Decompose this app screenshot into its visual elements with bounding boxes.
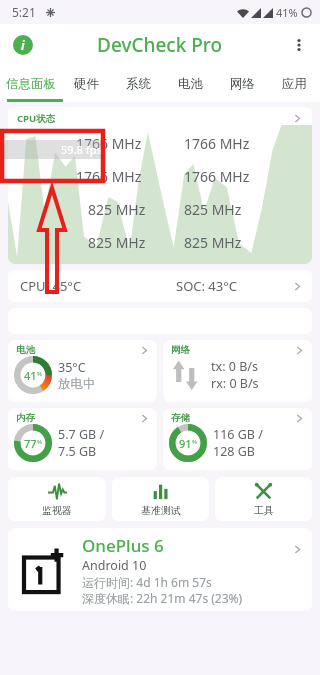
staticText: 825 MHz — [88, 233, 146, 252]
staticText: 5.7 GB / — [58, 426, 105, 443]
staticText: 1766 MHz — [76, 134, 142, 153]
staticText: CPU: 45°C — [20, 277, 82, 295]
staticText: 系统 — [126, 76, 151, 92]
staticText: 工具 — [254, 504, 274, 517]
staticText: 1766 MHz — [184, 134, 250, 153]
staticText: 信息面板 — [6, 76, 56, 92]
button[interactable]: 应用 — [268, 66, 320, 102]
button[interactable]: 基准测试 — [112, 477, 209, 521]
staticText: 运行时间: 4d 1h 6m 57s — [82, 574, 212, 590]
staticText: 放电中 — [58, 376, 96, 392]
staticText: % — [37, 370, 42, 378]
button[interactable]: CPU: 45°C — [8, 270, 312, 302]
staticText: SOC: 43°C — [176, 277, 238, 295]
staticText: 硬件 — [74, 76, 99, 92]
staticText: 116 GB / — [213, 426, 263, 443]
staticText: 91 — [179, 436, 192, 451]
staticText: 825 MHz — [184, 200, 242, 219]
staticText: 41% — [276, 5, 298, 20]
button[interactable]: 信息面板 — [0, 66, 61, 102]
staticText: rx: 0 B/s — [211, 375, 259, 392]
staticText: 41 — [24, 368, 37, 383]
staticText: 深度休眠: 22h 21m 47s (23%) — [82, 590, 243, 606]
staticText: % — [37, 438, 42, 446]
button[interactable]: 网络 — [163, 340, 312, 402]
button[interactable]: OnePlus 6 — [8, 528, 312, 611]
button[interactable]: 内存 — [8, 408, 157, 470]
button[interactable]: 网络 — [216, 66, 268, 102]
button[interactable]: 电池 — [8, 340, 157, 402]
staticText: 监视器 — [42, 504, 72, 517]
staticText: 应用 — [282, 76, 307, 92]
staticText: 825 MHz — [88, 200, 146, 219]
button[interactable]: 监视器 — [8, 477, 106, 521]
staticText: 825 MHz — [184, 233, 242, 252]
staticText: tx: 0 B/s — [211, 358, 258, 375]
staticText: 电池 — [178, 76, 203, 92]
staticText: 1766 MHz — [184, 167, 250, 186]
staticText: 59.8 fps — [61, 142, 102, 157]
staticText: DevCheck Pro — [97, 32, 223, 58]
staticText: % — [192, 438, 197, 446]
staticText: 7.5 GB — [58, 443, 97, 460]
staticText: 电池 — [16, 344, 35, 356]
staticText: i — [21, 37, 25, 53]
staticText: 35°C — [58, 359, 86, 376]
staticText: 77 — [24, 436, 37, 451]
staticText: 128 GB — [213, 443, 255, 460]
staticText: 存储 — [171, 412, 190, 424]
button[interactable]: 电池 — [164, 66, 216, 102]
button[interactable]: Info — [10, 32, 36, 58]
staticText: 5:21 — [12, 4, 36, 20]
staticText: 1766 MHz — [76, 167, 142, 186]
button[interactable]: 硬件 — [61, 66, 112, 102]
button[interactable]: 存储 — [163, 408, 312, 470]
button[interactable]: 工具 — [215, 477, 312, 521]
button[interactable]: More options — [284, 30, 314, 60]
staticText: 网络 — [171, 344, 190, 356]
staticText: CPU状态 — [17, 112, 56, 125]
staticText: OnePlus 6 — [82, 534, 164, 557]
staticText: 网络 — [230, 76, 255, 92]
staticText: 基准测试 — [141, 504, 181, 517]
staticText: Android 10 — [82, 557, 147, 574]
button[interactable]: CPU状态 — [8, 107, 312, 264]
button[interactable]: 系统 — [112, 66, 164, 102]
staticText: 内存 — [16, 412, 35, 424]
